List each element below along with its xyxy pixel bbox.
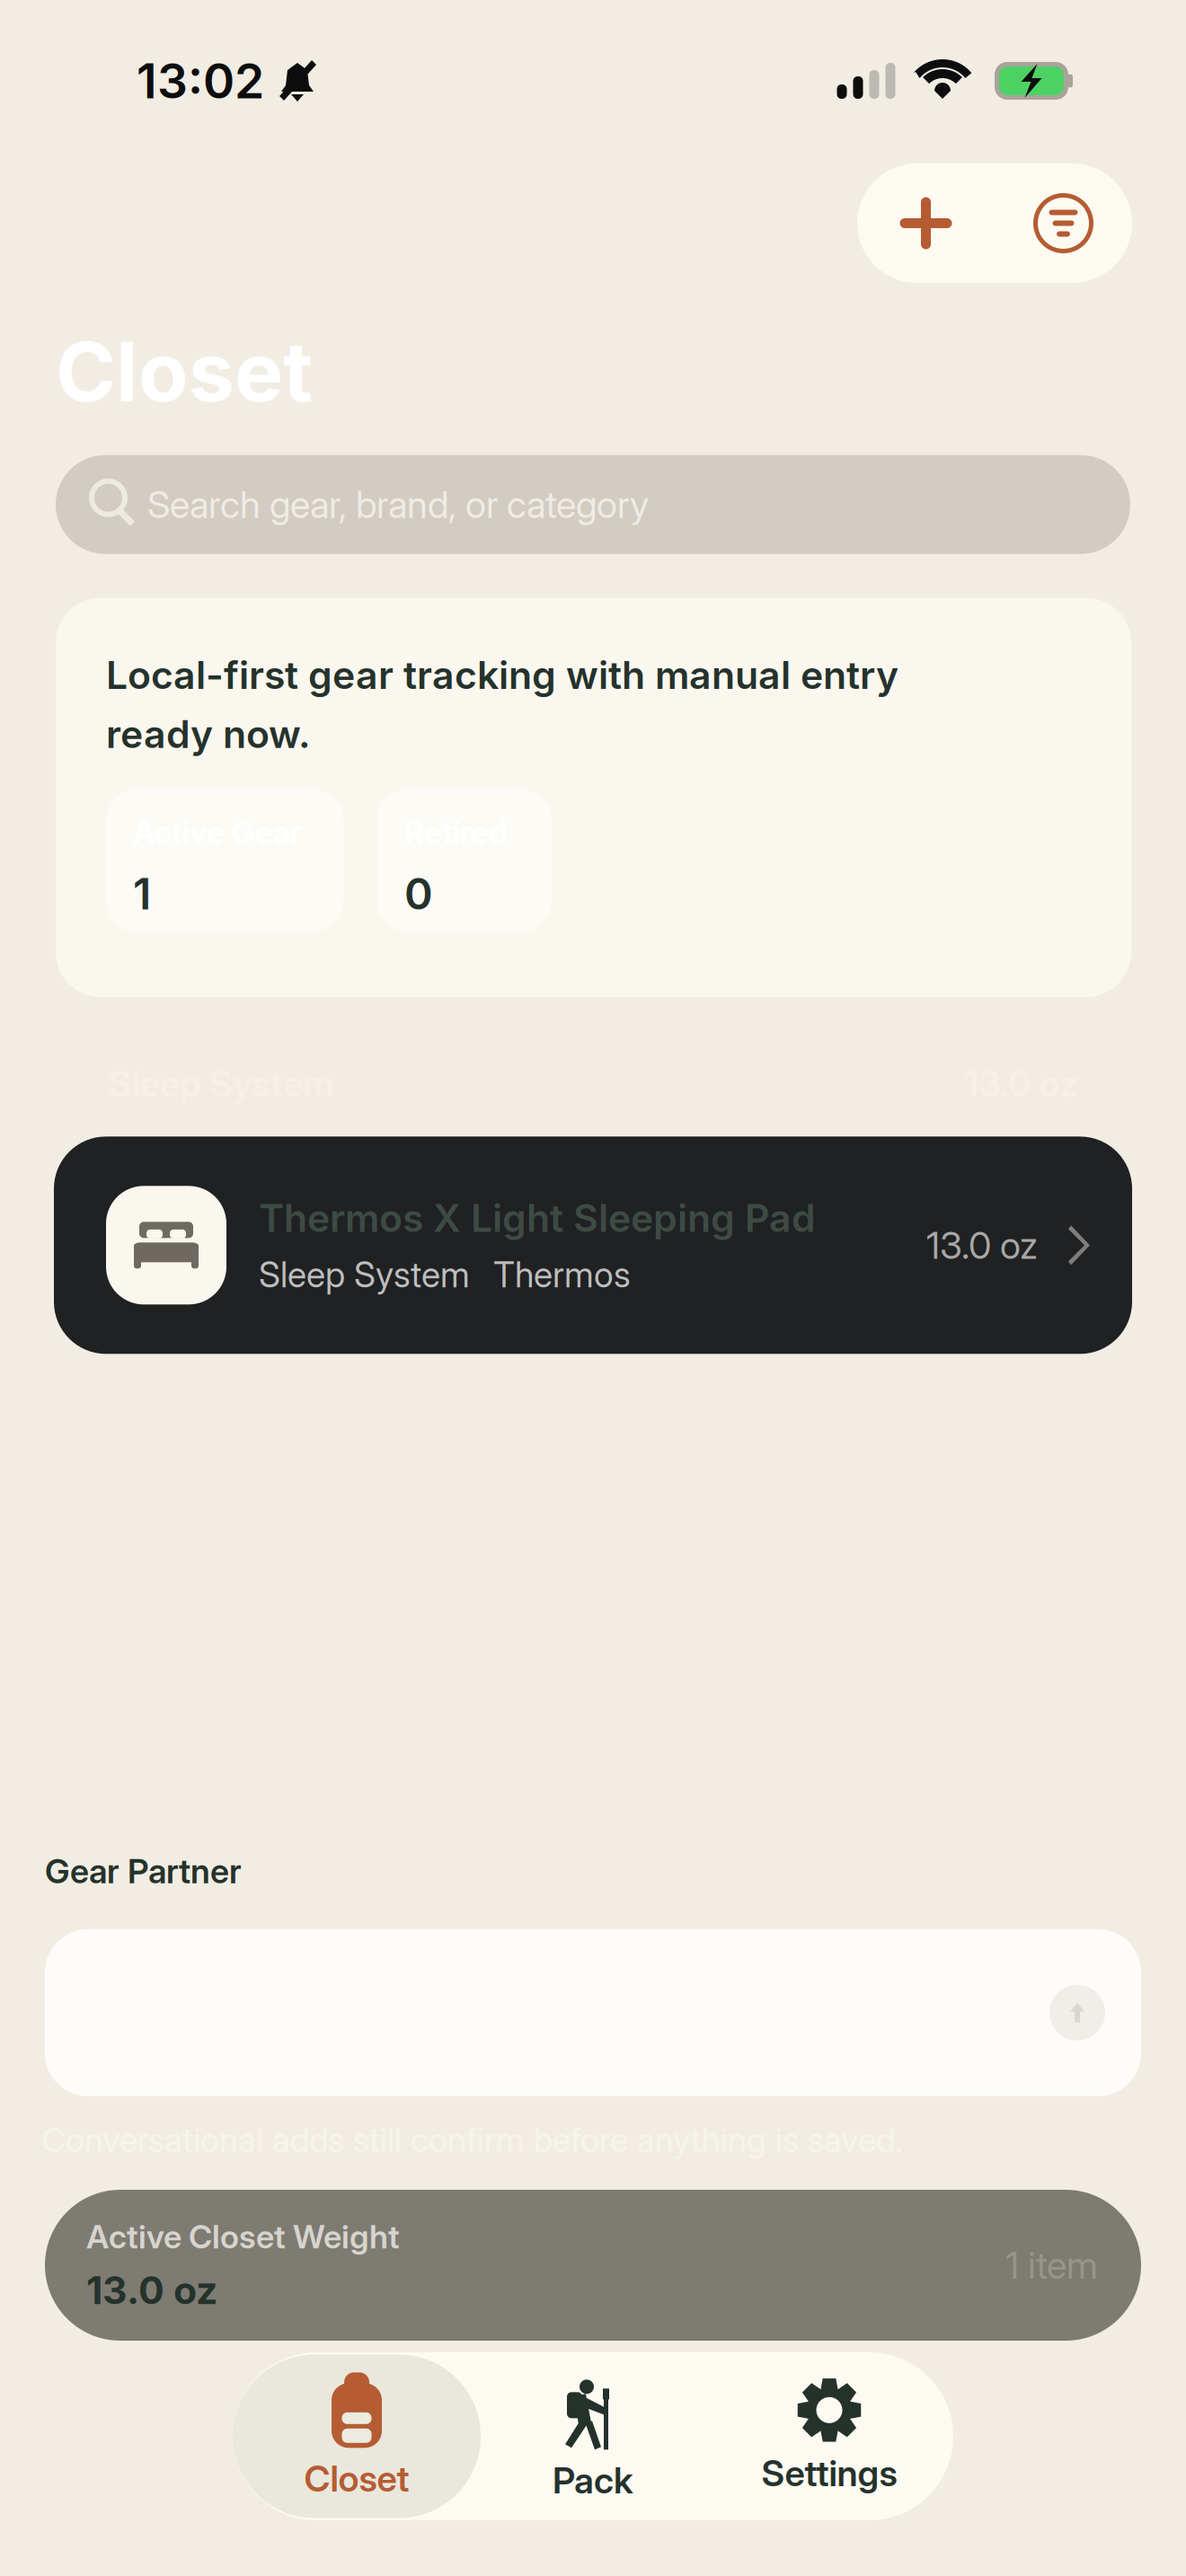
staticText: Closet [304,2457,409,2500]
staticText: 13.0 oz [86,2267,217,2313]
staticText: Active Closet Weight [86,2217,400,2256]
button[interactable]: Sort and filter [995,163,1132,283]
staticText: Sleep System [259,1254,470,1296]
staticText: Gear Partner [45,1851,242,1891]
staticText: Search gear, brand, or category [147,482,649,527]
staticText: 1 item [1005,2243,1098,2288]
staticText: 0 [404,868,433,920]
button[interactable]: Pack [481,2355,705,2518]
staticText: ready now. [106,711,311,757]
staticText: Settings [761,2451,897,2495]
staticText: Conversational adds still confirm before… [41,2120,903,2160]
button[interactable]: Send [1049,1985,1105,2041]
button[interactable]: Search gear, brand, or category [0,455,1186,554]
staticText: Pack [553,2459,633,2502]
staticText: Thermos X Light Sleeping Pad [259,1195,816,1241]
button[interactable]: Settings [705,2355,953,2518]
button[interactable]: Thermos X Light Sleeping Pad [0,1137,1186,1354]
staticText: Local-first gear tracking with manual en… [106,652,898,698]
staticText: Active Gear [133,814,302,851]
staticText: Retired [404,814,508,851]
staticText: 13.0 oz [926,1223,1038,1268]
button[interactable]: Closet [233,2355,481,2518]
staticText: 1 [133,868,151,920]
staticText: Closet [56,322,313,421]
staticText: Thermos [493,1254,631,1296]
button[interactable]: Add gear [857,163,995,283]
staticText: 13:02 [137,52,264,110]
